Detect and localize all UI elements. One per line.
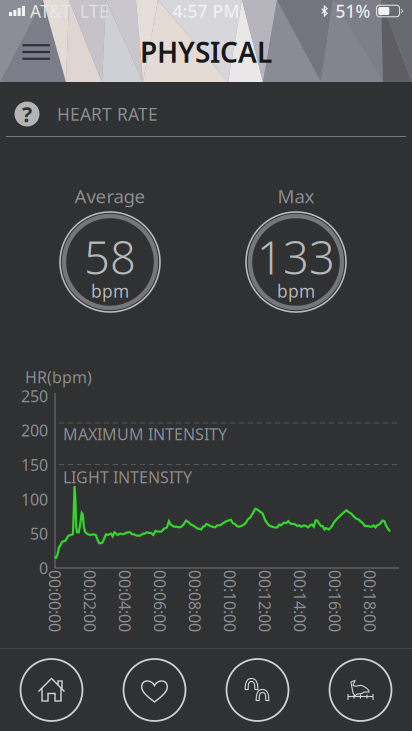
staticText: 4:57 PM: [172, 0, 239, 22]
staticText: PHYSICAL: [140, 33, 272, 71]
staticText: 58: [84, 227, 136, 287]
staticText: bpm: [277, 279, 315, 302]
button[interactable]: Help: [7, 94, 47, 134]
staticText: 00:18:00: [339, 590, 401, 612]
staticText: HR(bpm): [25, 366, 92, 388]
staticText: 00:12:00: [234, 590, 296, 612]
staticText: Average: [74, 184, 145, 208]
staticText: 00:00:00: [24, 590, 86, 612]
staticText: 00:02:00: [59, 590, 121, 612]
staticText: 100: [21, 489, 48, 510]
staticText: 0: [39, 557, 48, 579]
staticText: 133: [257, 227, 335, 287]
staticText: ?: [22, 100, 32, 128]
staticText: 00:04:00: [94, 590, 156, 612]
staticText: MAXIMUM INTENSITY: [63, 423, 227, 445]
staticText: 50: [30, 523, 48, 544]
staticText: 150: [21, 454, 48, 475]
staticText: bpm: [91, 279, 129, 302]
staticText: 00:08:00: [164, 590, 226, 612]
staticText: AT&T: [30, 0, 71, 22]
button[interactable]: Menu: [0, 22, 72, 82]
staticText: 51%: [335, 0, 370, 22]
staticText: 00:16:00: [304, 590, 366, 612]
button[interactable]: Horseshoes: [206, 649, 309, 731]
staticText: 00:10:00: [199, 590, 261, 612]
staticText: LTE: [80, 0, 109, 22]
staticText: LIGHT INTENSITY: [63, 466, 192, 488]
button[interactable]: Heart rate: [103, 649, 206, 731]
button[interactable]: Jumping: [309, 649, 412, 731]
staticText: 00:14:00: [269, 590, 331, 612]
staticText: HEART RATE: [57, 102, 158, 125]
button[interactable]: Home: [0, 649, 103, 731]
staticText: 250: [21, 385, 48, 407]
staticText: 00:06:00: [129, 590, 191, 612]
staticText: 200: [21, 420, 48, 441]
staticText: Max: [277, 184, 314, 208]
